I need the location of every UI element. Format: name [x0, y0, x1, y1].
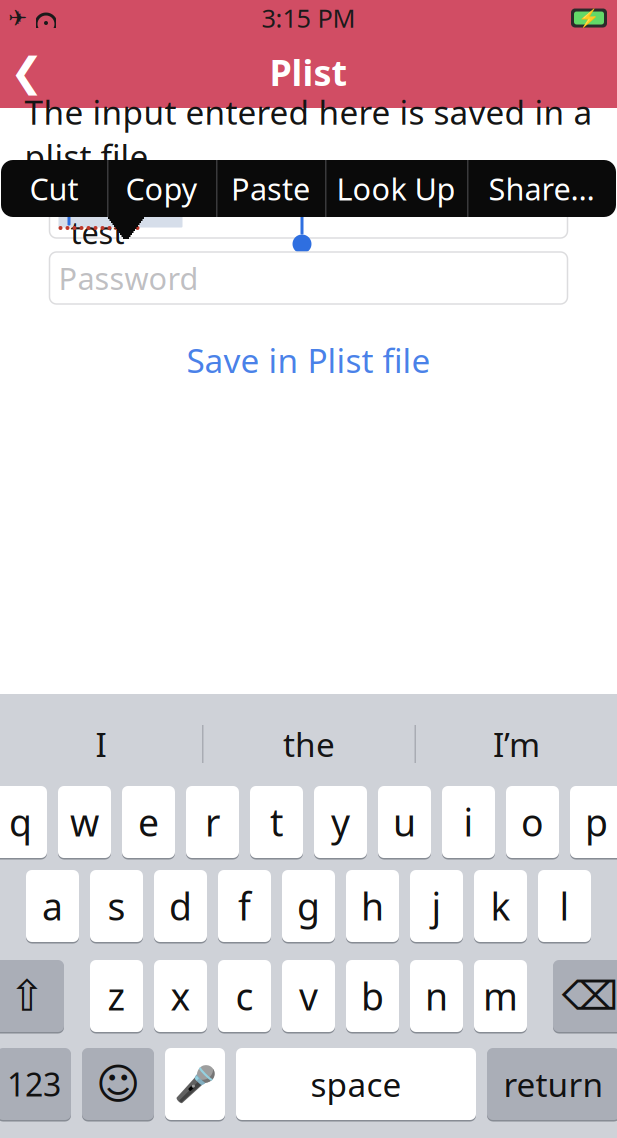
staticText: ⌫	[561, 973, 617, 1019]
staticText: Save in Plist file	[186, 338, 430, 382]
staticText: p	[585, 797, 608, 847]
staticText: ☺	[96, 1060, 140, 1108]
button[interactable]: Shift	[0, 958, 64, 1033]
button[interactable]: y	[314, 784, 367, 859]
button[interactable]: p	[570, 784, 617, 859]
button[interactable]: s	[90, 868, 143, 943]
button[interactable]: Emoji	[82, 1046, 154, 1121]
button[interactable]: b	[346, 958, 399, 1033]
button[interactable]: the	[203, 714, 414, 774]
button[interactable]: Dictation	[165, 1046, 225, 1121]
staticText: ✈	[8, 5, 27, 31]
staticText: Copy	[125, 168, 197, 209]
button[interactable]: Save in Plist file	[158, 336, 458, 384]
staticText: y	[331, 797, 350, 847]
button[interactable]: g	[282, 868, 335, 943]
staticText: I	[95, 722, 106, 766]
staticText: Plist	[269, 48, 347, 96]
button[interactable]: Share…	[467, 160, 616, 217]
button[interactable]: d	[154, 868, 207, 943]
button[interactable]: Back	[0, 44, 54, 100]
button[interactable]: t	[250, 784, 303, 859]
staticText: m	[483, 971, 518, 1021]
staticText: b	[361, 971, 384, 1021]
button[interactable]: i	[442, 784, 495, 859]
button[interactable]: 123	[0, 1046, 71, 1121]
staticText: 3:15 PM	[261, 1, 355, 35]
staticText: Password	[58, 258, 198, 298]
staticText: I’m	[493, 722, 540, 766]
staticText: z	[107, 971, 125, 1021]
staticText: x	[170, 971, 190, 1021]
button[interactable]: Cut	[1, 160, 107, 217]
button[interactable]: l	[538, 868, 591, 943]
button[interactable]: Look Up	[325, 160, 467, 217]
button[interactable]: o	[506, 784, 559, 859]
button[interactable]: a	[26, 868, 79, 943]
button[interactable]: f	[218, 868, 271, 943]
staticText: ⚡	[578, 8, 600, 28]
staticText: j	[431, 881, 441, 931]
staticText: v	[299, 971, 318, 1021]
staticText: s	[107, 881, 125, 931]
staticText: o	[521, 797, 544, 847]
staticText: i	[463, 797, 473, 847]
button[interactable]: space	[236, 1046, 476, 1121]
button[interactable]: z	[90, 958, 143, 1033]
staticText: f	[238, 881, 251, 931]
button[interactable]: u	[378, 784, 431, 859]
staticText: the	[283, 722, 335, 766]
staticText: g	[297, 881, 320, 931]
staticText: q	[9, 797, 32, 847]
staticText: The input entered here is saved in a pli…	[24, 90, 592, 178]
button[interactable]: Copy	[107, 160, 216, 217]
staticText: Redfox test	[70, 171, 170, 253]
button[interactable]: k	[474, 868, 527, 943]
staticText: d	[169, 881, 192, 931]
staticText: Cut	[29, 168, 78, 209]
button[interactable]: I’m	[416, 714, 617, 774]
staticText: h	[361, 881, 384, 931]
staticText: a	[42, 881, 63, 931]
button[interactable]: r	[186, 784, 239, 859]
button[interactable]: e	[122, 784, 175, 859]
staticText: return	[503, 1062, 603, 1106]
button[interactable]: return	[487, 1046, 617, 1121]
staticText: n	[425, 971, 448, 1021]
button[interactable]: j	[410, 868, 463, 943]
staticText: 123	[7, 1063, 61, 1105]
staticText: k	[490, 881, 510, 931]
button[interactable]: h	[346, 868, 399, 943]
staticText: space	[310, 1062, 401, 1106]
button[interactable]: c	[218, 958, 271, 1033]
button[interactable]: m	[474, 958, 527, 1033]
staticText: u	[393, 797, 416, 847]
staticText: 🎤	[173, 1064, 216, 1104]
staticText: t	[270, 797, 283, 847]
staticText: ❮	[10, 49, 44, 95]
staticText: w	[70, 797, 99, 847]
button[interactable]: Paste	[216, 160, 325, 217]
staticText: r	[205, 797, 220, 847]
staticText: Share…	[488, 168, 594, 209]
button[interactable]: w	[58, 784, 111, 859]
button[interactable]: I	[0, 714, 202, 774]
staticText: Paste	[231, 168, 310, 209]
button[interactable]: x	[154, 958, 207, 1033]
staticText: e	[138, 797, 159, 847]
button[interactable]: n	[410, 958, 463, 1033]
staticText: l	[559, 881, 569, 931]
button[interactable]: Delete	[553, 958, 617, 1033]
staticText: c	[235, 971, 253, 1021]
staticText: Look Up	[336, 168, 455, 209]
button[interactable]: v	[282, 958, 335, 1033]
button[interactable]: q	[0, 784, 47, 859]
staticText: ⇧	[9, 972, 45, 1020]
